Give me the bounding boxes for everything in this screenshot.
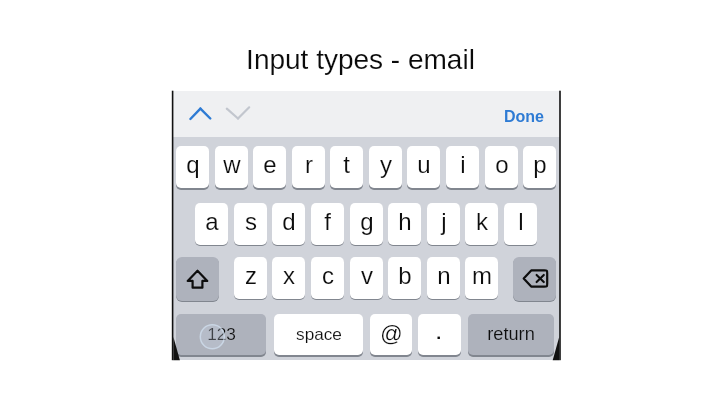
button[interactable]: j bbox=[427, 203, 460, 245]
button[interactable]: return bbox=[468, 314, 554, 355]
staticText: f bbox=[324, 208, 331, 235]
staticText: Done bbox=[504, 108, 544, 126]
button[interactable]: d bbox=[272, 203, 305, 245]
staticText: v bbox=[361, 262, 373, 289]
staticText: g bbox=[360, 208, 374, 235]
staticText: s bbox=[245, 208, 257, 235]
staticText: u bbox=[417, 151, 431, 178]
staticText: return bbox=[487, 324, 535, 344]
button[interactable]: n bbox=[427, 257, 460, 299]
button[interactable]: l bbox=[504, 203, 537, 245]
button[interactable]: x bbox=[272, 257, 305, 299]
button[interactable]: Next field bbox=[224, 104, 252, 120]
staticText: w bbox=[223, 151, 241, 178]
button[interactable]: y bbox=[369, 146, 402, 188]
button[interactable]: Done bbox=[501, 107, 547, 127]
staticText: r bbox=[305, 151, 313, 178]
staticText: m bbox=[472, 262, 492, 289]
staticText: j bbox=[441, 208, 447, 235]
button[interactable]: Previous field bbox=[188, 104, 214, 120]
button[interactable]: m bbox=[465, 257, 498, 299]
staticText: o bbox=[495, 151, 509, 178]
button[interactable]: s bbox=[234, 203, 267, 245]
button[interactable]: z bbox=[234, 257, 267, 299]
staticText: a bbox=[205, 208, 219, 235]
button[interactable]: i bbox=[446, 146, 479, 188]
button[interactable]: Period bbox=[418, 314, 461, 355]
button[interactable]: o bbox=[485, 146, 518, 188]
staticText: n bbox=[437, 262, 451, 289]
button[interactable]: b bbox=[388, 257, 421, 299]
staticText: h bbox=[398, 208, 412, 235]
button[interactable]: t bbox=[330, 146, 363, 188]
button[interactable]: Shift bbox=[176, 257, 219, 301]
staticText: d bbox=[282, 208, 296, 235]
staticText: k bbox=[476, 208, 488, 235]
button[interactable]: c bbox=[311, 257, 344, 299]
staticText: x bbox=[283, 262, 295, 289]
staticText: z bbox=[245, 262, 257, 289]
button[interactable]: a bbox=[195, 203, 228, 245]
staticText: @ bbox=[380, 321, 403, 346]
button[interactable]: v bbox=[350, 257, 383, 299]
button[interactable]: f bbox=[311, 203, 344, 245]
button[interactable]: w bbox=[215, 146, 248, 188]
staticText: y bbox=[380, 151, 392, 178]
staticText: l bbox=[518, 208, 524, 235]
staticText: i bbox=[460, 151, 466, 178]
button[interactable]: 123 bbox=[176, 314, 266, 355]
staticText: Input types - email bbox=[246, 44, 475, 75]
staticText: t bbox=[343, 151, 350, 178]
button[interactable]: g bbox=[350, 203, 383, 245]
staticText: q bbox=[186, 151, 200, 178]
button[interactable]: u bbox=[407, 146, 440, 188]
staticText: e bbox=[263, 151, 277, 178]
staticText: 123 bbox=[207, 324, 236, 343]
button[interactable]: q bbox=[176, 146, 209, 188]
button[interactable]: r bbox=[292, 146, 325, 188]
staticText: b bbox=[398, 262, 412, 289]
button[interactable]: space bbox=[274, 314, 363, 355]
button[interactable]: k bbox=[465, 203, 498, 245]
staticText: space bbox=[296, 324, 342, 343]
button[interactable]: h bbox=[388, 203, 421, 245]
button[interactable]: Backspace bbox=[513, 257, 556, 301]
button[interactable]: p bbox=[523, 146, 556, 188]
staticText: p bbox=[533, 151, 547, 178]
staticText: c bbox=[322, 262, 334, 289]
button[interactable]: @ bbox=[370, 314, 412, 355]
button[interactable]: e bbox=[253, 146, 286, 188]
